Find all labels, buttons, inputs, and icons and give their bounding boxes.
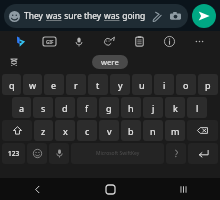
staticText: a (19, 102, 25, 114)
button[interactable]: o (176, 74, 196, 95)
button[interactable]: More (184, 31, 214, 52)
staticText: They (24, 10, 46, 22)
staticText: c (85, 125, 90, 137)
button[interactable]: n (143, 120, 163, 141)
staticText: o (183, 79, 189, 91)
button[interactable]: j (143, 97, 163, 118)
staticText: w (29, 79, 37, 91)
staticText: b (128, 125, 134, 137)
staticText: GIF (46, 39, 54, 45)
button[interactable]: Bing (6, 31, 35, 52)
button[interactable]: were (92, 55, 128, 69)
button[interactable]: q (2, 74, 21, 95)
staticText: t (96, 79, 100, 91)
button[interactable]: m (165, 120, 185, 141)
button[interactable]: t (88, 74, 108, 95)
button[interactable]: w (23, 74, 42, 95)
staticText: sure they (62, 10, 104, 22)
button[interactable]: i (154, 74, 174, 95)
button[interactable]: e (44, 74, 64, 95)
button[interactable]: Home (74, 178, 147, 200)
button[interactable]: Enter (188, 143, 218, 164)
staticText: j (152, 102, 155, 114)
button[interactable]: p (198, 74, 218, 95)
staticText: m (171, 125, 180, 137)
button[interactable]: Attach (148, 8, 164, 24)
button[interactable]: r (66, 74, 86, 95)
button[interactable]: f (77, 97, 97, 118)
button[interactable]: Recents (147, 178, 220, 200)
button[interactable]: v (99, 120, 119, 141)
button[interactable]: x (55, 120, 75, 141)
button[interactable]: u (132, 74, 152, 95)
staticText: u (139, 79, 145, 91)
button[interactable]: c (77, 120, 97, 141)
button[interactable]: 123 (2, 143, 25, 164)
button[interactable]: Backspace (187, 120, 218, 141)
staticText: v (107, 125, 112, 137)
staticText: z (41, 125, 46, 137)
staticText: g (106, 102, 112, 114)
button[interactable]: Settings (154, 31, 184, 52)
button[interactable]: d (55, 97, 75, 118)
staticText: f (85, 102, 89, 114)
button[interactable]: Send (192, 4, 216, 28)
staticText: k (173, 102, 178, 114)
button[interactable]: Shift (2, 120, 32, 141)
staticText: was (46, 10, 62, 22)
button[interactable]: Back (0, 178, 74, 200)
button[interactable]: Expand (8, 56, 20, 68)
staticText: n (150, 125, 156, 137)
staticText: d (62, 102, 68, 114)
staticText: going (120, 10, 146, 22)
staticText: y (118, 79, 123, 91)
staticText: s (41, 102, 46, 114)
staticText: Microsoft SwiftKey (96, 150, 140, 157)
button[interactable]: Space (71, 143, 164, 164)
staticText: was (104, 10, 120, 22)
button[interactable]: z (34, 120, 53, 141)
button[interactable]: b (121, 120, 141, 141)
staticText: p (205, 79, 211, 91)
button[interactable]: Voice input (49, 143, 69, 164)
staticText: i (163, 79, 166, 91)
button[interactable]: a (12, 97, 31, 118)
button[interactable]: y (110, 74, 130, 95)
button[interactable]: Stickers (94, 31, 124, 52)
staticText: l (196, 102, 199, 114)
button[interactable]: They (4, 4, 188, 28)
staticText: e (51, 79, 57, 91)
staticText: x (63, 125, 68, 137)
button[interactable]: g (99, 97, 119, 118)
button[interactable]: Clipboard (124, 31, 154, 52)
staticText: 123 (8, 149, 20, 158)
staticText: r (74, 79, 78, 91)
staticText: q (9, 79, 15, 91)
button[interactable]: Voice (64, 31, 94, 52)
button[interactable]: s (33, 97, 53, 118)
staticText: were (101, 57, 119, 67)
button[interactable]: Camera (167, 8, 183, 24)
button[interactable]: GIF (35, 31, 64, 52)
button[interactable]: Emoji (27, 143, 47, 164)
button[interactable]: h (121, 97, 141, 118)
button[interactable]: Period (166, 143, 186, 164)
button[interactable]: l (187, 97, 207, 118)
staticText: h (128, 102, 134, 114)
button[interactable]: k (165, 97, 185, 118)
